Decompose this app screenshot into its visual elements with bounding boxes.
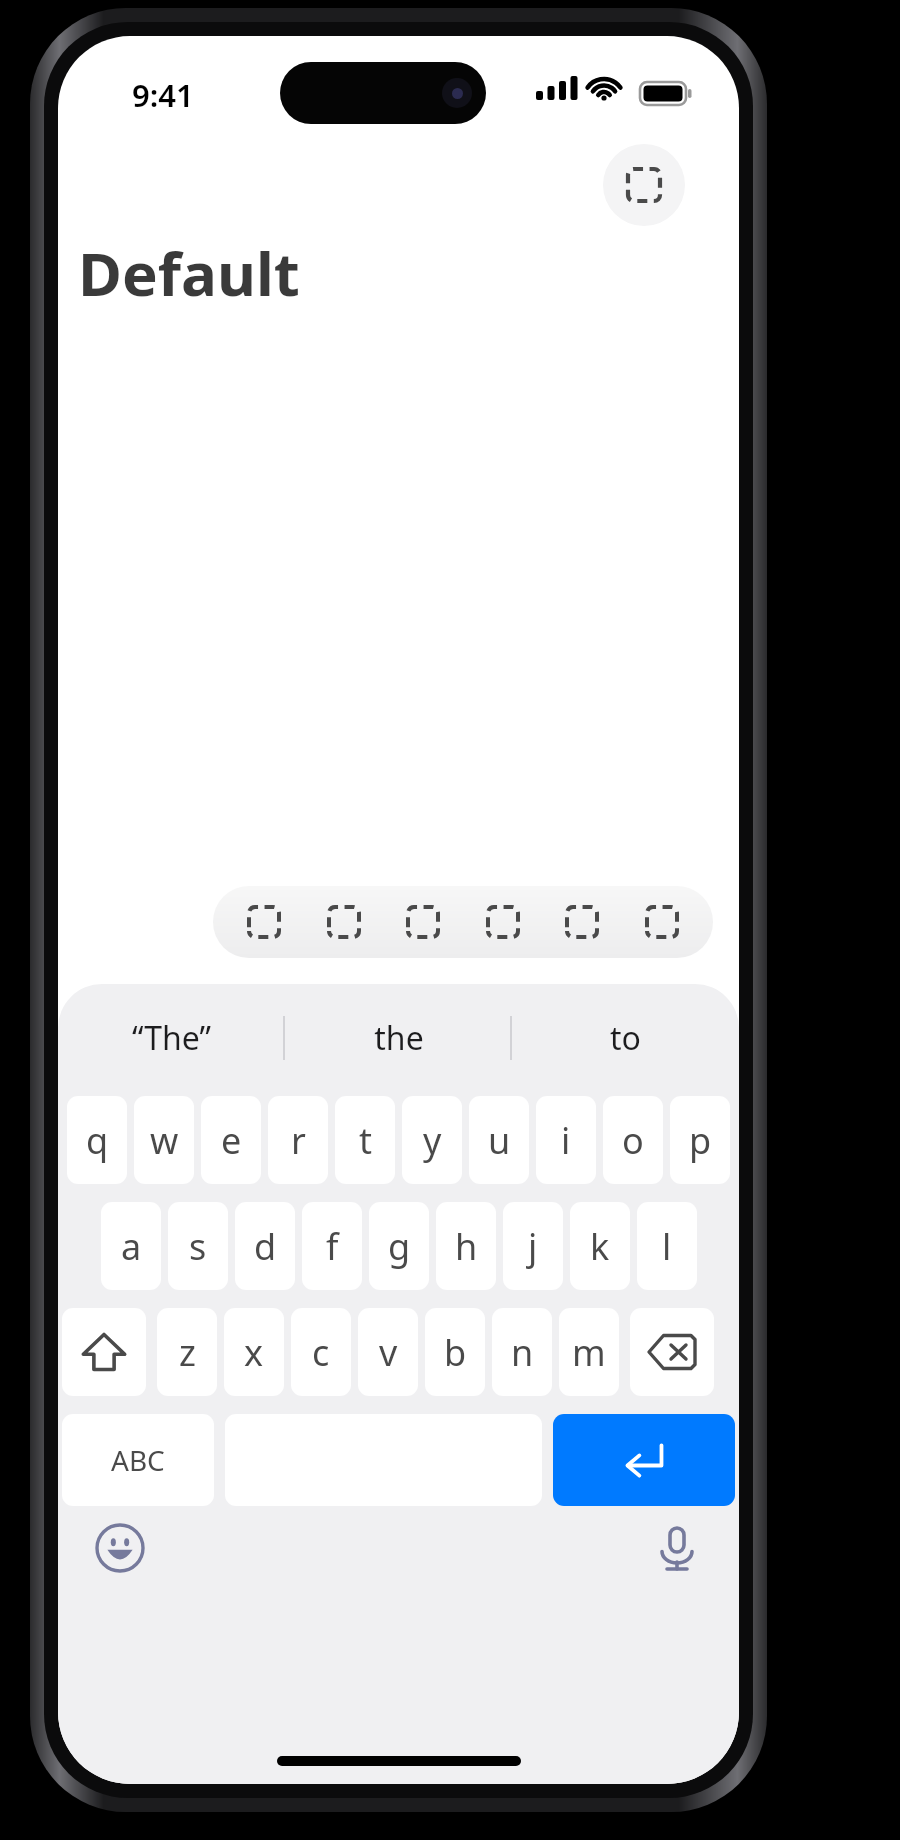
staticText: to [610,1016,641,1060]
button[interactable]: k [570,1202,630,1290]
staticText: o [622,1116,644,1165]
button[interactable]: to [512,984,739,1092]
button[interactable]: Tool [316,894,372,950]
button[interactable]: the [285,984,512,1092]
staticText: v [379,1328,398,1377]
staticText: ABC [111,1441,165,1479]
staticText: d [254,1222,277,1271]
staticText: l [662,1222,672,1271]
staticText: “The” [132,1016,211,1060]
button[interactable]: Return [553,1414,735,1506]
button[interactable]: t [335,1096,395,1184]
button[interactable]: Backspace [630,1308,714,1396]
staticText: w [150,1116,179,1165]
staticText: e [221,1116,242,1165]
staticText: j [528,1222,538,1271]
staticText: the [374,1016,424,1060]
button[interactable]: h [436,1202,496,1290]
button[interactable]: c [291,1308,351,1396]
staticText: y [423,1116,442,1165]
button[interactable]: m [559,1308,619,1396]
button[interactable]: Tool [634,894,690,950]
button[interactable]: Tool [475,894,531,950]
staticText: m [572,1328,606,1377]
staticText: 9:41 [132,74,194,116]
button[interactable]: q [67,1096,127,1184]
staticText: u [488,1116,511,1165]
button[interactable]: y [402,1096,462,1184]
staticText: g [388,1222,411,1271]
button[interactable]: b [425,1308,485,1396]
button[interactable]: p [670,1096,730,1184]
button[interactable]: Emoji [88,1516,152,1580]
staticText: f [326,1222,339,1271]
button[interactable]: l [637,1202,697,1290]
button[interactable]: Action [603,144,685,226]
button[interactable]: e [201,1096,261,1184]
button[interactable]: Tool [236,894,292,950]
button[interactable]: j [503,1202,563,1290]
button[interactable]: o [603,1096,663,1184]
button[interactable]: Shift [62,1308,146,1396]
staticText: b [444,1328,467,1377]
button[interactable]: z [157,1308,217,1396]
button[interactable]: “The” [58,984,285,1092]
staticText: k [590,1222,610,1271]
staticText: a [121,1222,142,1271]
button[interactable]: w [134,1096,194,1184]
staticText: Default [78,232,300,314]
staticText: r [291,1116,306,1165]
button[interactable]: r [268,1096,328,1184]
button[interactable]: x [224,1308,284,1396]
button[interactable]: i [536,1096,596,1184]
button[interactable]: Tool [395,894,451,950]
button[interactable]: d [235,1202,295,1290]
button[interactable]: f [302,1202,362,1290]
staticText: z [179,1328,196,1377]
staticText: q [86,1116,109,1165]
staticText: n [511,1328,534,1377]
button[interactable]: u [469,1096,529,1184]
staticText: h [455,1222,478,1271]
button[interactable]: g [369,1202,429,1290]
button[interactable]: Dictation [645,1516,709,1580]
staticText: p [689,1116,712,1165]
staticText: s [189,1222,207,1271]
button[interactable]: a [101,1202,161,1290]
button[interactable]: v [358,1308,418,1396]
staticText: i [561,1116,571,1165]
staticText: t [359,1116,372,1165]
button[interactable]: n [492,1308,552,1396]
staticText: x [244,1328,264,1377]
staticText: c [312,1328,330,1377]
button[interactable]: Tool [554,894,610,950]
button[interactable]: s [168,1202,228,1290]
button[interactable]: ABC [62,1414,214,1506]
